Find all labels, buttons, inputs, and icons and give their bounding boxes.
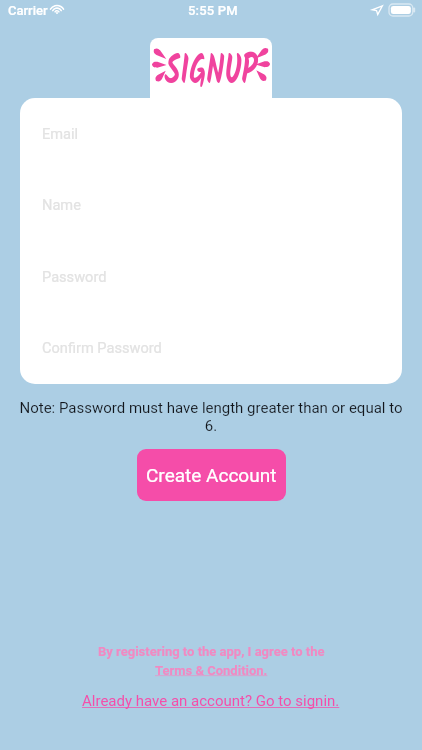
button[interactable]: Already have an account? Go to signin. bbox=[82, 692, 340, 710]
staticText: By registering to the app, I agree to th… bbox=[98, 644, 325, 659]
button[interactable]: Create Account bbox=[137, 449, 286, 501]
staticText: SIGNUP bbox=[164, 40, 257, 107]
staticText: Note: Password must have length greater … bbox=[14, 399, 408, 435]
staticText: Password bbox=[42, 268, 107, 285]
staticText: 5:55 PM bbox=[188, 3, 238, 18]
button[interactable]: Terms & Condition. bbox=[155, 663, 268, 678]
staticText: Name bbox=[42, 196, 81, 213]
staticText: Confirm Password bbox=[42, 339, 162, 356]
staticText: Email bbox=[42, 125, 79, 142]
staticText: Carrier bbox=[8, 3, 48, 18]
button[interactable]: Confirm Password bbox=[42, 330, 380, 364]
button[interactable]: Name bbox=[42, 187, 380, 221]
button[interactable]: Password bbox=[42, 259, 380, 293]
staticText: Create Account bbox=[146, 464, 277, 486]
